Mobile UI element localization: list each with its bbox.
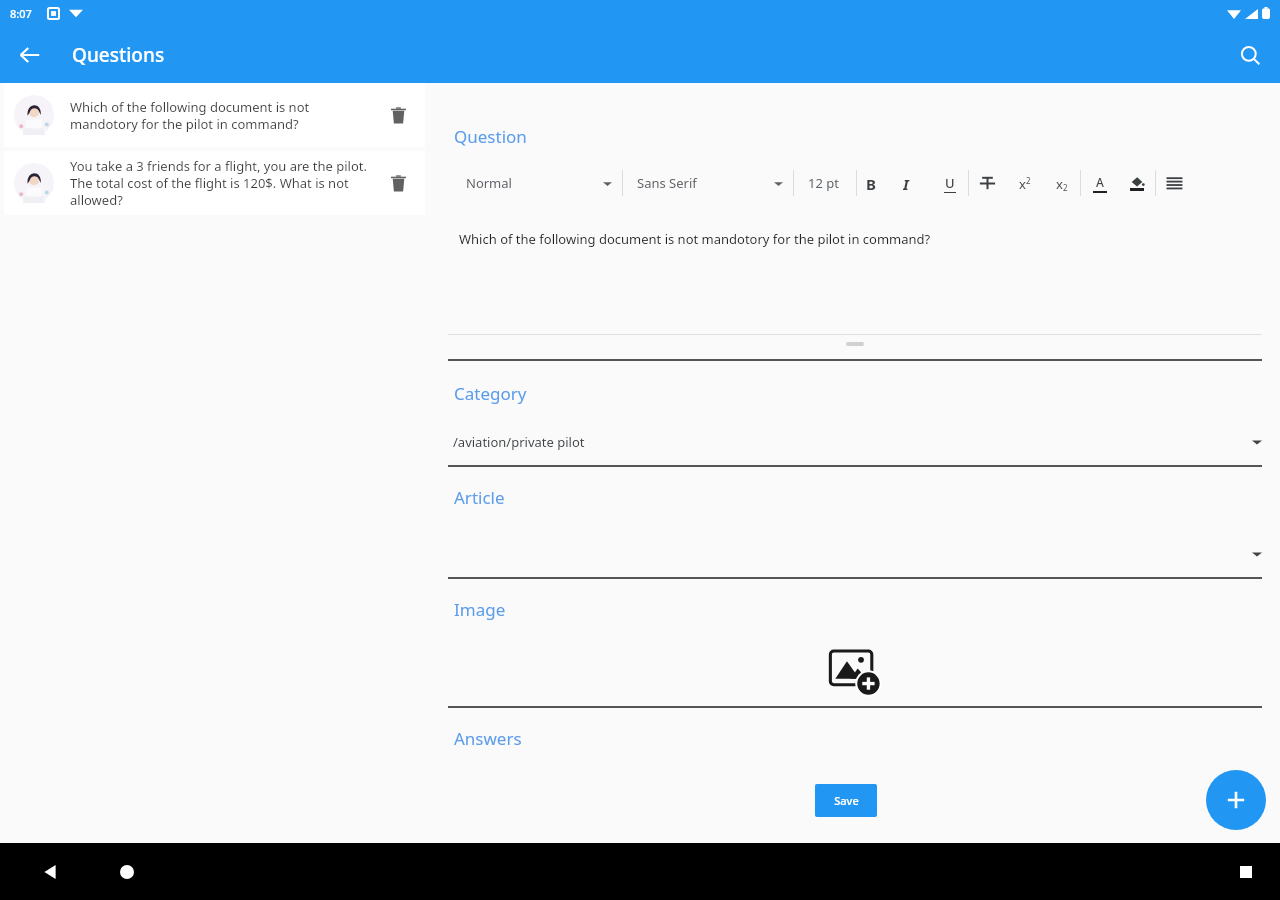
staticText: I — [903, 174, 922, 193]
button[interactable]: Underline — [931, 163, 968, 203]
staticText: Answers — [454, 727, 522, 750]
button[interactable]: Delete — [379, 164, 417, 202]
button[interactable]: Sans Serif — [637, 163, 783, 203]
button[interactable]: Add image — [827, 641, 883, 697]
staticText: x — [1019, 175, 1026, 193]
staticText: You take a 3 friends for a flight, you a… — [70, 157, 371, 209]
staticText: 8:07 — [10, 6, 32, 21]
button[interactable]: You take a 3 friends for a flight, you a… — [4, 151, 425, 215]
button[interactable]: 12 pt — [808, 163, 846, 203]
staticText: A — [1096, 174, 1104, 190]
staticText: 12 pt — [808, 174, 839, 192]
staticText: Which of the following document is not m… — [459, 230, 931, 248]
button[interactable]: Search — [1228, 33, 1272, 77]
staticText: 2 — [1063, 182, 1068, 193]
button[interactable]: Normal — [466, 163, 612, 203]
staticText: Image — [454, 598, 506, 621]
button[interactable]: Bold — [857, 163, 894, 203]
staticText: x — [1056, 175, 1063, 193]
staticText: Questions — [72, 42, 165, 68]
button[interactable]: Subscript — [1043, 163, 1080, 203]
staticText: Sans Serif — [637, 174, 697, 192]
staticText: U — [945, 174, 955, 192]
staticText: Category — [454, 382, 527, 405]
button[interactable]: Add question — [1206, 770, 1266, 830]
button[interactable]: Which of the following document is not m… — [4, 83, 425, 147]
button[interactable]: Highlight color — [1118, 163, 1155, 203]
button[interactable]: Back — [8, 33, 52, 77]
staticText: Save — [834, 793, 859, 808]
button[interactable]: Superscript — [1006, 163, 1043, 203]
staticText: Article — [454, 486, 505, 509]
button[interactable]: Strikethrough — [969, 163, 1006, 203]
staticText: B — [866, 174, 885, 193]
button[interactable]: /aviation/private pilot — [448, 431, 1262, 453]
staticText: Question — [454, 125, 527, 148]
staticText: Which of the following document is not m… — [70, 98, 371, 133]
button[interactable] — [448, 543, 1262, 565]
staticText: Normal — [466, 174, 512, 192]
button[interactable]: Home — [107, 852, 147, 892]
button[interactable]: Italic — [894, 163, 931, 203]
button[interactable]: Save — [815, 784, 877, 817]
button[interactable]: Back — [30, 852, 70, 892]
staticText: /aviation/private pilot — [453, 433, 585, 451]
button[interactable]: Align — [1156, 163, 1193, 203]
button[interactable]: Recents — [1226, 852, 1266, 892]
staticText: 2 — [1026, 175, 1031, 186]
button[interactable]: Delete — [379, 96, 417, 134]
button[interactable]: Text color — [1081, 163, 1118, 203]
